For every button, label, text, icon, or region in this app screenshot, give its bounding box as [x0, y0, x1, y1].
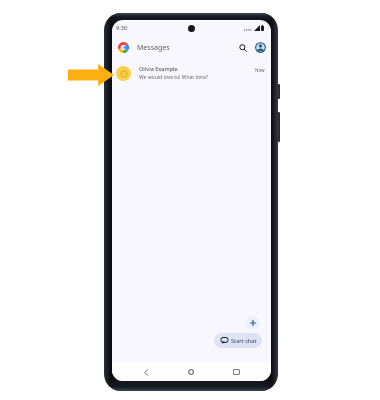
button[interactable]: Account — [255, 42, 266, 53]
button[interactable]: New conversation — [246, 316, 259, 329]
staticText: Start chat — [231, 337, 257, 344]
staticText: 9:30 — [116, 24, 127, 31]
staticText: Now — [255, 67, 265, 73]
staticText: We would love to! What time? — [139, 74, 209, 81]
button[interactable]: Start chat — [214, 333, 262, 348]
button[interactable]: Search — [236, 41, 249, 54]
staticText: Olivia Example — [139, 65, 178, 72]
button[interactable]: Home — [183, 364, 199, 380]
button[interactable]: Recent apps — [228, 364, 244, 380]
button[interactable]: Olivia Example — [112, 58, 271, 88]
button[interactable]: Back — [138, 364, 154, 380]
staticText: Messages — [137, 43, 170, 53]
